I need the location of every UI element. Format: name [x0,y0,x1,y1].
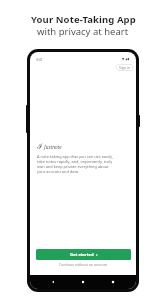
button[interactable]: Get started › [36,249,131,260]
staticText: Your Note-Taking App [31,13,136,26]
button[interactable]: Recent apps [106,275,120,289]
staticText: Continue without an account [59,262,108,267]
button[interactable]: Sign in [116,64,133,71]
staticText: with privacy at heart [37,25,129,38]
staticText: A note-taking app that you can use easil… [37,154,122,174]
button[interactable]: Continue without an account [30,260,136,268]
button[interactable]: Home [76,275,90,289]
button[interactable]: Back [46,275,60,289]
staticText: ℐ [37,141,43,151]
staticText: Sign in [119,65,130,70]
staticText: Get started › [70,252,98,258]
staticText: 9:41 [36,57,43,62]
staticText: Justnote [44,144,62,150]
